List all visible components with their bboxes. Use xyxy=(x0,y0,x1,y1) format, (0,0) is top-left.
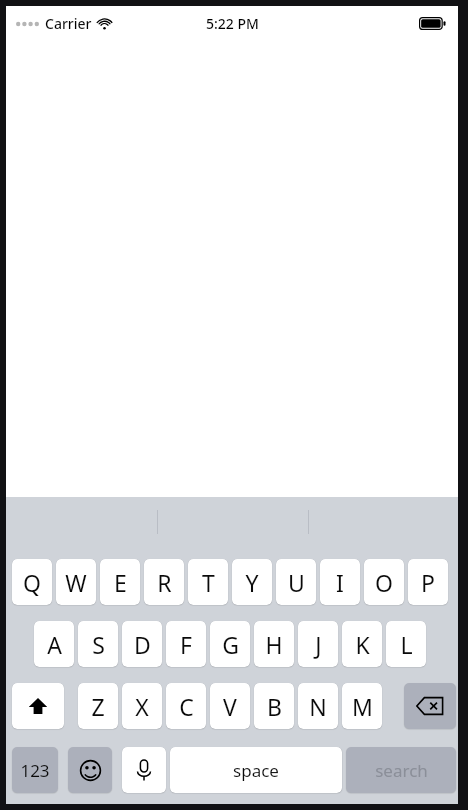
button[interactable]: X xyxy=(122,683,162,729)
button[interactable]: Backspace xyxy=(404,683,456,729)
staticText: 5:22 PM xyxy=(206,14,259,33)
staticText: V xyxy=(223,691,237,722)
button[interactable]: Z xyxy=(78,683,118,729)
staticText: O xyxy=(375,567,393,598)
staticText: A xyxy=(47,629,62,660)
staticText: R xyxy=(157,567,172,598)
staticText: B xyxy=(267,691,282,722)
button[interactable]: O xyxy=(364,559,404,605)
button[interactable]: J xyxy=(298,621,338,667)
staticText: Carrier xyxy=(45,14,92,33)
button[interactable]: H xyxy=(254,621,294,667)
button[interactable]: Q xyxy=(12,559,52,605)
button[interactable]: Y xyxy=(232,559,272,605)
button[interactable]: Shift xyxy=(12,683,64,729)
button[interactable]: Dictation xyxy=(122,747,166,793)
staticText: M xyxy=(352,691,373,722)
staticText: Q xyxy=(23,567,41,598)
button[interactable]: A xyxy=(34,621,74,667)
button[interactable]: L xyxy=(386,621,426,667)
staticText: J xyxy=(315,629,322,660)
staticText: Y xyxy=(245,567,259,598)
staticText: X xyxy=(135,691,149,722)
staticText: search xyxy=(375,759,428,782)
staticText: 123 xyxy=(20,759,50,782)
button[interactable]: search xyxy=(346,747,456,793)
button[interactable]: M xyxy=(342,683,382,729)
button[interactable]: T xyxy=(188,559,228,605)
staticText: P xyxy=(421,567,435,598)
button[interactable]: F xyxy=(166,621,206,667)
staticText: N xyxy=(309,691,327,722)
button[interactable]: I xyxy=(320,559,360,605)
button[interactable]: space xyxy=(170,747,342,793)
button[interactable]: R xyxy=(144,559,184,605)
button[interactable]: K xyxy=(342,621,382,667)
staticText: H xyxy=(265,629,283,660)
button[interactable]: S xyxy=(78,621,118,667)
button[interactable]: U xyxy=(276,559,316,605)
button[interactable]: P xyxy=(408,559,448,605)
staticText: F xyxy=(180,629,192,660)
button[interactable]: E xyxy=(100,559,140,605)
staticText: L xyxy=(400,629,413,660)
staticText: C xyxy=(179,691,194,722)
staticText: T xyxy=(202,567,215,598)
staticText: W xyxy=(65,567,87,598)
staticText: Z xyxy=(91,691,105,722)
button[interactable]: W xyxy=(56,559,96,605)
staticText: K xyxy=(355,629,370,660)
staticText: U xyxy=(288,567,305,598)
button[interactable]: 123 xyxy=(12,747,58,793)
staticText: E xyxy=(114,567,127,598)
button[interactable]: G xyxy=(210,621,250,667)
staticText: I xyxy=(336,567,344,598)
button[interactable]: B xyxy=(254,683,294,729)
button[interactable]: D xyxy=(122,621,162,667)
staticText: S xyxy=(92,629,105,660)
button[interactable]: Emoji xyxy=(68,747,112,793)
staticText: D xyxy=(134,629,151,660)
staticText: space xyxy=(233,759,279,782)
staticText: G xyxy=(222,629,239,660)
button[interactable]: C xyxy=(166,683,206,729)
button[interactable]: N xyxy=(298,683,338,729)
button[interactable]: V xyxy=(210,683,250,729)
